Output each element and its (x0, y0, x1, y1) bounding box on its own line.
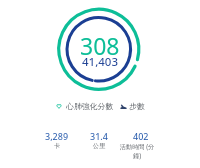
button[interactable]: 心肺強化分數 (56, 101, 114, 111)
button[interactable]: 31.4 (81, 130, 117, 142)
staticText: 卡 (39, 142, 75, 150)
staticText: 402 (133, 130, 149, 142)
other: 步數 (120, 103, 127, 110)
staticText: 41,403 (82, 54, 119, 70)
staticText: 308 (80, 30, 120, 61)
button[interactable]: 步數 (120, 101, 145, 111)
staticText: 步數 (129, 101, 145, 111)
staticText: 活動時間 (分鐘) (119, 142, 155, 159)
staticText: 3,289 (45, 130, 69, 142)
button[interactable]: 402 (123, 130, 159, 142)
button[interactable]: 3,289 (39, 130, 75, 142)
staticText: 31.4 (90, 130, 108, 142)
staticText: 心肺強化分數 (66, 101, 114, 111)
other: 心肺強化分數 (56, 103, 62, 109)
staticText: 公里 (81, 142, 117, 150)
